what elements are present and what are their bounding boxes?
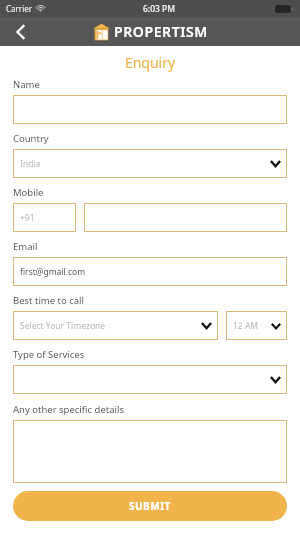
button[interactable] xyxy=(13,420,287,483)
button[interactable] xyxy=(13,95,287,124)
staticText: Type of Services xyxy=(13,348,85,361)
button[interactable]: Select Your Timezone xyxy=(13,311,218,340)
staticText: Country xyxy=(13,132,49,145)
staticText: Mobile xyxy=(13,186,44,199)
button[interactable]: first@gmail.com xyxy=(13,257,287,286)
button[interactable]: SUBMIT xyxy=(13,491,287,521)
staticText: Best time to call xyxy=(13,294,85,307)
staticText: India xyxy=(20,158,41,170)
button[interactable]: Back xyxy=(0,17,40,46)
staticText: Email xyxy=(13,240,38,253)
staticText: Select Your Timezone xyxy=(20,320,106,332)
button[interactable]: 12 AM xyxy=(226,311,287,340)
staticText: 12 AM xyxy=(233,320,259,332)
staticText: Carrier xyxy=(6,3,33,14)
button[interactable] xyxy=(13,365,287,394)
staticText: +91 xyxy=(20,212,35,224)
staticText: 6:03 PM xyxy=(143,3,176,15)
button[interactable]: India xyxy=(13,149,287,178)
staticText: first@gmail.com xyxy=(20,266,86,278)
staticText: Name xyxy=(13,78,40,91)
button[interactable] xyxy=(84,203,287,232)
staticText: Enquiry xyxy=(0,53,300,72)
staticText: SUBMIT xyxy=(129,499,171,513)
staticText: PROPERTISM xyxy=(114,22,208,41)
button[interactable]: +91 xyxy=(13,203,76,232)
staticText: Any other specific details xyxy=(13,403,124,416)
